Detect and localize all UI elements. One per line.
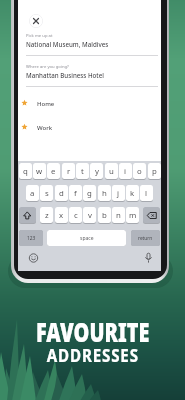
staticText: Where are you going? xyxy=(26,64,69,70)
staticText: return xyxy=(138,235,153,242)
staticText: s xyxy=(45,188,49,199)
staticText: o xyxy=(137,166,142,177)
staticText: c xyxy=(74,210,78,221)
staticText: k xyxy=(130,188,135,199)
button[interactable]: r xyxy=(62,163,75,179)
staticText: r xyxy=(67,166,71,177)
button[interactable]: u xyxy=(105,163,118,179)
button[interactable] xyxy=(19,207,36,223)
button[interactable]: space xyxy=(47,230,126,246)
staticText: space xyxy=(80,235,94,242)
staticText: 123 xyxy=(27,235,36,242)
staticText: u xyxy=(109,166,114,177)
button[interactable]: b xyxy=(98,207,111,223)
staticText: p xyxy=(152,166,157,177)
button[interactable]: y xyxy=(90,163,103,179)
staticText: y xyxy=(95,166,99,177)
staticText: g xyxy=(87,188,92,199)
button[interactable] xyxy=(29,14,43,28)
button[interactable]: k xyxy=(126,185,139,201)
staticText: ADDRESSES xyxy=(47,343,139,368)
button[interactable]: j xyxy=(112,185,125,201)
button[interactable]: Home xyxy=(18,97,161,110)
button[interactable]: q xyxy=(19,163,32,179)
button[interactable]: p xyxy=(148,163,161,179)
staticText: National Museum, Maldives xyxy=(26,40,109,48)
button[interactable]: f xyxy=(69,185,82,201)
staticText: FAVOURITE xyxy=(36,314,150,350)
staticText: x xyxy=(59,210,64,221)
button[interactable]: e xyxy=(47,163,60,179)
staticText: Work xyxy=(37,124,53,132)
button[interactable]: Work xyxy=(18,121,161,134)
staticText: Pick me up at xyxy=(26,33,53,39)
staticText: z xyxy=(45,210,49,221)
staticText: d xyxy=(59,188,64,199)
staticText: Manhattan Business Hotel xyxy=(26,71,104,79)
staticText: q xyxy=(23,166,28,177)
staticText: Home xyxy=(37,100,55,108)
button[interactable]: d xyxy=(55,185,68,201)
button[interactable]: 123 xyxy=(19,230,43,246)
staticText: m xyxy=(129,210,137,221)
staticText: w xyxy=(36,166,43,177)
staticText: l xyxy=(145,188,148,199)
staticText: e xyxy=(51,166,56,177)
button[interactable]: g xyxy=(83,185,96,201)
button[interactable]: w xyxy=(33,163,46,179)
button[interactable]: m xyxy=(126,207,139,223)
button[interactable]: h xyxy=(98,185,111,201)
button[interactable]: l xyxy=(140,185,153,201)
button[interactable]: z xyxy=(40,207,53,223)
button[interactable]: c xyxy=(69,207,82,223)
staticText: i xyxy=(124,166,127,177)
staticText: f xyxy=(74,188,77,199)
staticText: h xyxy=(102,188,107,199)
staticText: n xyxy=(116,210,121,221)
button[interactable]: v xyxy=(83,207,96,223)
button[interactable]: n xyxy=(112,207,125,223)
button[interactable]: t xyxy=(76,163,89,179)
button[interactable]: a xyxy=(26,185,39,201)
button[interactable]: return xyxy=(131,230,160,246)
button[interactable]: s xyxy=(40,185,53,201)
staticText: a xyxy=(30,188,35,199)
staticText: t xyxy=(81,166,84,177)
button[interactable] xyxy=(143,207,160,223)
button[interactable]: x xyxy=(55,207,68,223)
staticText: v xyxy=(88,210,92,221)
button[interactable]: i xyxy=(119,163,132,179)
staticText: b xyxy=(102,210,107,221)
button[interactable]: o xyxy=(133,163,146,179)
staticText: j xyxy=(117,188,120,199)
